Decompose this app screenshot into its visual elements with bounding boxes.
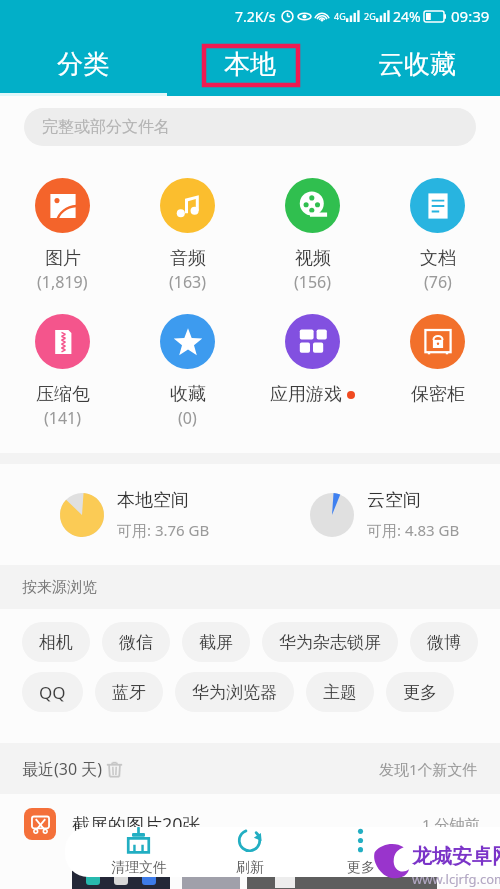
staticText: 云空间 <box>367 489 421 512</box>
button[interactable]: 本地空间 <box>0 464 250 565</box>
staticText: 微博 <box>427 632 461 653</box>
button[interactable]: 文档 <box>375 178 500 293</box>
staticText: 蓝牙 <box>112 682 146 703</box>
staticText: 华为杂志锁屏 <box>279 632 381 653</box>
button[interactable]: 云空间 <box>250 464 500 565</box>
button[interactable]: 压缩包 <box>0 314 125 429</box>
staticText: (0) <box>178 407 197 429</box>
staticText: 更多 <box>347 859 375 877</box>
staticText: 主题 <box>323 682 357 703</box>
button[interactable]: 截屏 <box>182 622 250 662</box>
staticText: 2G <box>364 10 376 22</box>
button[interactable]: QQ <box>22 672 83 712</box>
staticText: 09:39 <box>451 6 490 26</box>
staticText: 收藏 <box>170 383 206 406</box>
button[interactable]: 更多 <box>386 672 454 712</box>
staticText: (141) <box>44 407 82 429</box>
button[interactable]: 保密柜 <box>375 314 500 406</box>
staticText: 清理文件 <box>111 859 167 877</box>
staticText: 云收藏 <box>378 48 456 81</box>
button[interactable]: 清理文件 <box>83 827 194 877</box>
staticText: 截屏的图片20张 <box>72 812 201 837</box>
staticText: 完整或部分文件名 <box>42 117 170 137</box>
staticText: 相机 <box>39 632 73 653</box>
button[interactable]: 蓝牙 <box>95 672 163 712</box>
staticText: 截屏 <box>199 632 233 653</box>
button[interactable]: 音频 <box>125 178 250 293</box>
button[interactable]: 更多 <box>305 827 416 877</box>
staticText: 图片 <box>45 247 81 270</box>
button[interactable]: 微信 <box>102 622 170 662</box>
staticText: (76) <box>424 271 452 293</box>
staticText: 应用游戏 <box>270 383 342 406</box>
button[interactable]: 收藏 <box>125 314 250 429</box>
button[interactable]: 视频 <box>250 178 375 293</box>
staticText: (163) <box>169 271 207 293</box>
button[interactable]: 华为杂志锁屏 <box>262 622 398 662</box>
staticText: 分类 <box>57 48 109 81</box>
button[interactable]: 主题 <box>306 672 374 712</box>
staticText: 可用: 3.76 GB <box>117 520 210 540</box>
staticText: (1,819) <box>37 271 88 293</box>
staticText: 可用: 4.83 GB <box>367 520 460 540</box>
button[interactable]: 刷新 <box>194 827 305 877</box>
button[interactable]: 完整或部分文件名 <box>24 108 476 146</box>
staticText: 7.2K/s <box>235 7 276 26</box>
staticText: 本地 <box>224 48 276 81</box>
staticText: 音频 <box>170 247 206 270</box>
button[interactable]: 分类 <box>0 32 166 96</box>
other: Clear recent <box>106 761 123 778</box>
staticText: 最近(30 天) <box>22 758 103 780</box>
button[interactable]: 云收藏 <box>333 32 500 96</box>
staticText: 华为浏览器 <box>192 682 277 703</box>
button[interactable]: 华为浏览器 <box>175 672 294 712</box>
staticText: 视频 <box>295 247 331 270</box>
staticText: QQ <box>39 681 66 704</box>
staticText: 龙城安卓网 <box>412 844 500 869</box>
staticText: 更多 <box>403 682 437 703</box>
staticText: 微信 <box>119 632 153 653</box>
button[interactable]: 微博 <box>410 622 478 662</box>
staticText: 压缩包 <box>36 383 90 406</box>
staticText: 24% <box>393 7 421 26</box>
button[interactable]: 本地 <box>166 32 333 96</box>
staticText: 本地空间 <box>117 489 189 512</box>
staticText: 4G <box>334 10 346 22</box>
staticText: 保密柜 <box>411 383 465 406</box>
staticText: www.lcjrfg.com <box>412 870 500 888</box>
button[interactable]: 相机 <box>22 622 90 662</box>
staticText: (156) <box>294 271 332 293</box>
staticText: 刷新 <box>236 859 264 877</box>
button[interactable]: 截屏的图片20张 <box>0 794 500 854</box>
staticText: 1 分钟前 <box>422 814 480 834</box>
staticText: 发现1个新文件 <box>379 759 478 779</box>
button[interactable]: 应用游戏 <box>250 314 375 406</box>
button[interactable]: 图片 <box>0 178 125 293</box>
staticText: 按来源浏览 <box>22 578 97 597</box>
staticText: 文档 <box>420 247 456 270</box>
